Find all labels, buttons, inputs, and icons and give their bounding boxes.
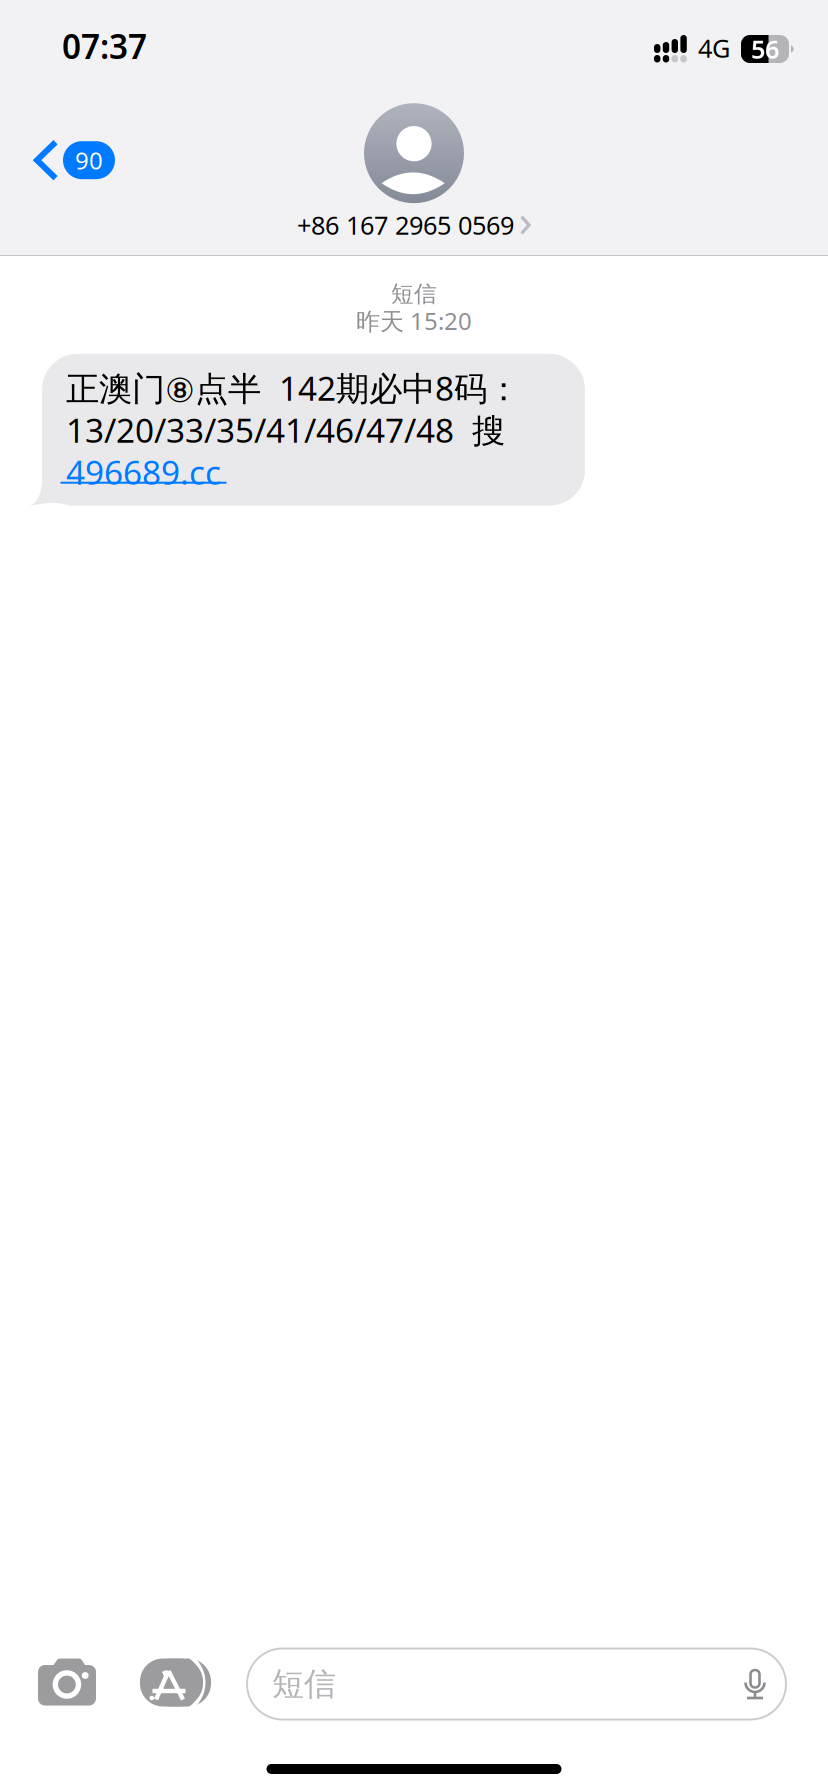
staticText: 短信 bbox=[272, 1664, 336, 1704]
button[interactable]: Camera bbox=[19, 1656, 115, 1737]
staticText: 90 bbox=[75, 144, 103, 176]
button[interactable]: 90 bbox=[0, 124, 135, 196]
staticText: 13/20/33/35/41/46/47/48 搜 bbox=[66, 408, 505, 452]
staticText: 4G bbox=[698, 31, 730, 65]
staticText: 07:37 bbox=[62, 24, 147, 68]
staticText: 短信 bbox=[391, 280, 437, 308]
button[interactable]: Apps bbox=[115, 1656, 247, 1738]
staticText: 昨天 15:20 bbox=[356, 305, 472, 337]
staticText: 正澳门⑧点半 142期必中8码： bbox=[66, 366, 520, 410]
staticText: +86 167 2965 0569 bbox=[297, 208, 514, 242]
staticText: 496689.cc bbox=[66, 450, 221, 494]
staticText: 56 bbox=[751, 32, 779, 66]
button[interactable]: Dictate bbox=[742, 1667, 768, 1701]
